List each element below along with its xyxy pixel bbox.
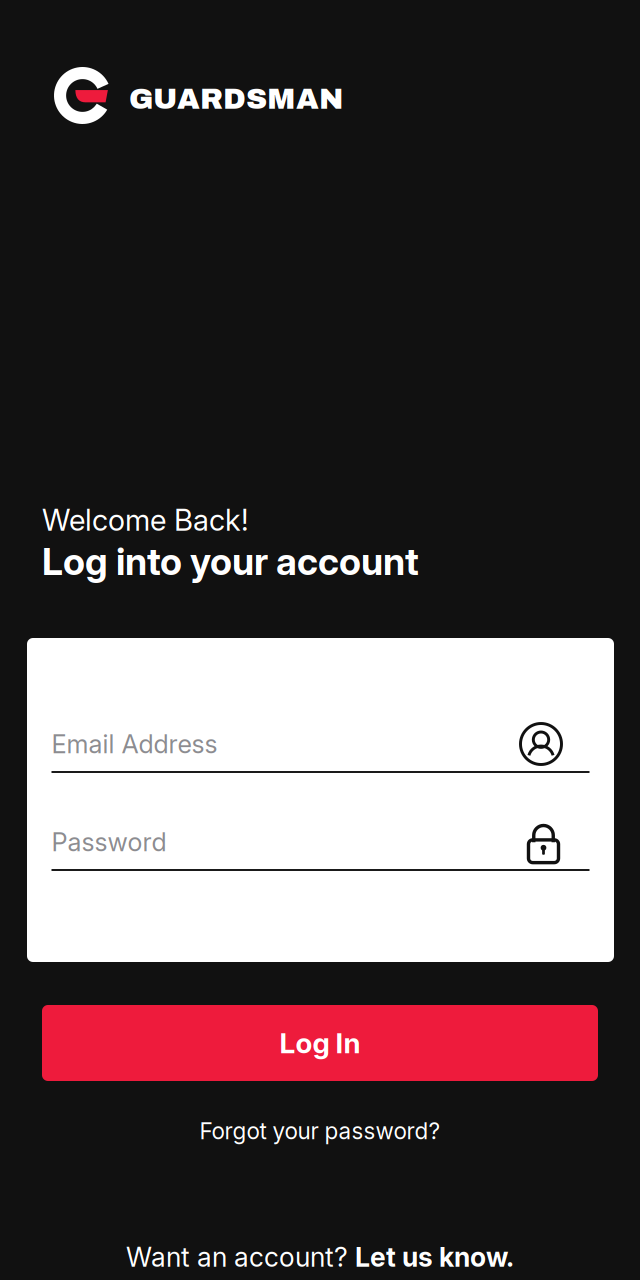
staticText: Forgot your password? <box>199 1117 440 1145</box>
staticText: GUARDSMAN <box>129 83 343 115</box>
staticText: Password <box>51 827 166 857</box>
button[interactable]: Guardsman <box>0 0 360 190</box>
staticText: Log into your account <box>42 539 419 584</box>
button[interactable]: Want an account? Let us know. <box>100 1235 540 1279</box>
button[interactable]: Email Address <box>51 717 589 773</box>
button[interactable]: Forgot your password? <box>170 1111 470 1151</box>
staticText: Log In <box>279 1026 360 1060</box>
staticText: Want an account? Let us know. <box>126 1241 514 1273</box>
staticText: Email Address <box>51 729 217 759</box>
button[interactable]: Log In <box>42 1005 598 1081</box>
button[interactable]: Password <box>51 815 589 871</box>
staticText: Welcome Back! <box>42 502 249 538</box>
